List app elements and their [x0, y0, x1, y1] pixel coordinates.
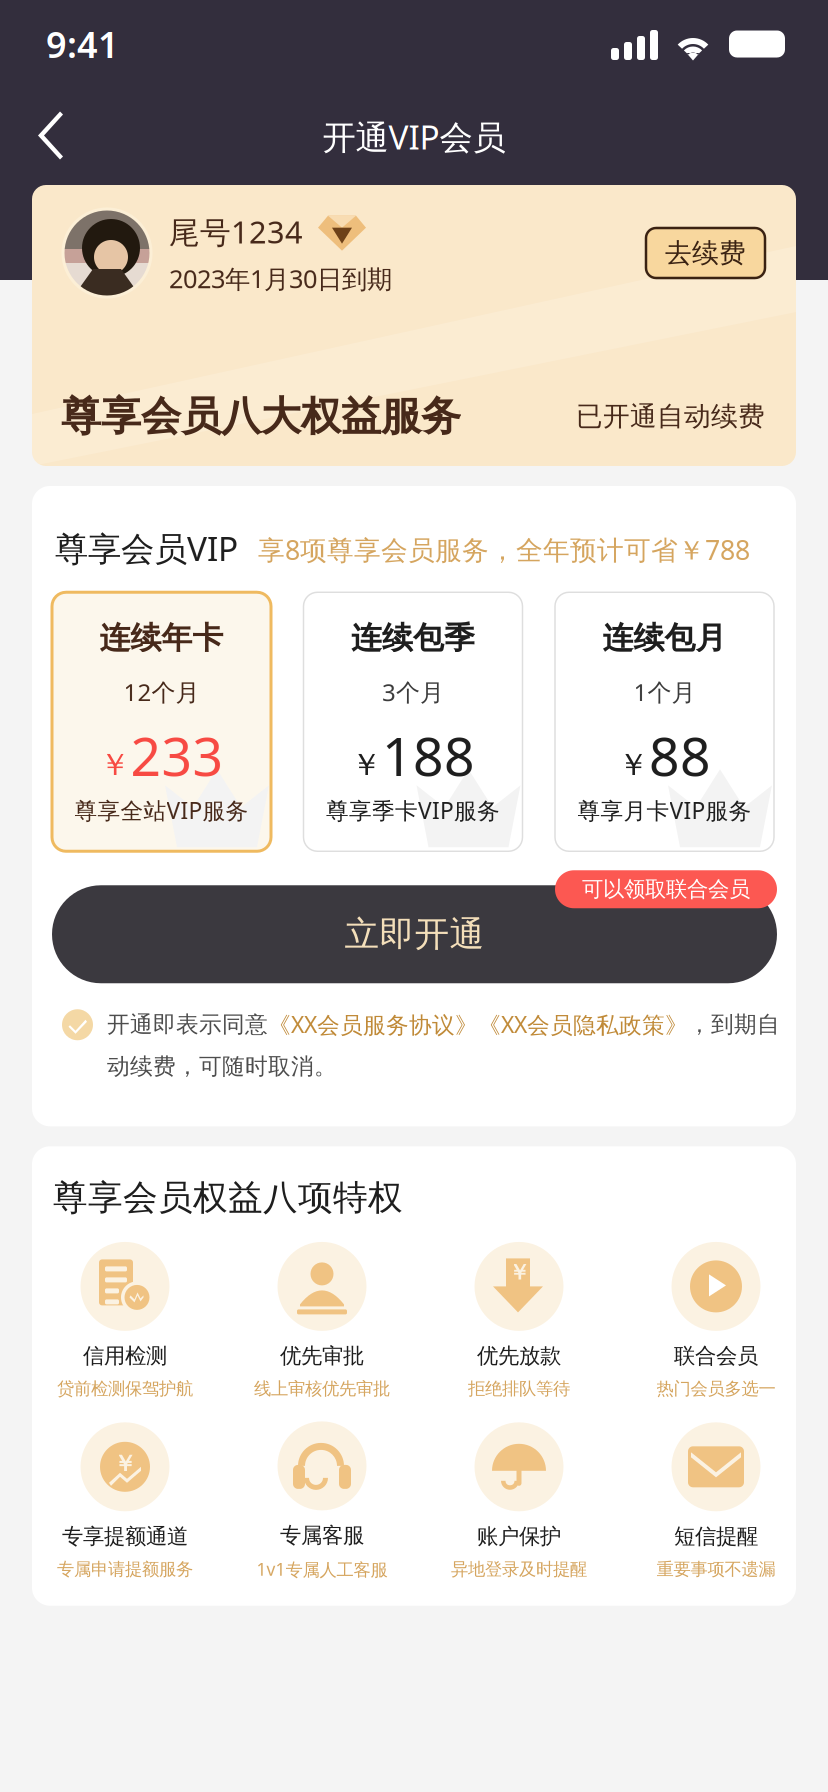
button[interactable]: ￥: [468, 1242, 570, 1399]
button[interactable]: 去续费: [646, 228, 765, 278]
staticText: ￥: [113, 1450, 136, 1478]
staticText: 热门会员多选一: [656, 1378, 775, 1399]
button[interactable]: ￥: [57, 1422, 193, 1580]
staticText: 线上审核优先审批: [254, 1378, 390, 1399]
staticText: 拒绝排队等待: [468, 1378, 570, 1399]
staticText: ￥: [99, 746, 130, 784]
button[interactable]: 短信提醒: [656, 1422, 775, 1580]
staticText: 动续费，可随时取消。: [107, 1052, 337, 1080]
staticText: 9:41: [46, 20, 119, 68]
staticText: 可以领取联合会员: [582, 876, 750, 902]
staticText: ，到期自: [688, 1010, 780, 1038]
button[interactable]: 联合会员: [656, 1242, 775, 1399]
button[interactable]: 账户保护: [451, 1422, 587, 1580]
staticText: 88: [649, 720, 711, 791]
staticText: 联合会员: [674, 1343, 758, 1369]
staticText: 已开通自动续费: [576, 400, 765, 433]
staticText: 12个月: [123, 676, 199, 708]
button[interactable]: 优先审批: [254, 1242, 390, 1399]
button[interactable]: 连续年卡: [52, 592, 271, 851]
staticText: 连续包季: [351, 619, 475, 657]
staticText: 立即开通: [344, 913, 484, 956]
staticText: 233: [130, 720, 223, 791]
button[interactable]: Agree to terms: [62, 1009, 93, 1040]
staticText: 尊享月卡VIP服务: [577, 795, 751, 825]
staticText: 优先审批: [280, 1343, 364, 1369]
staticText: 尊享会员权益八项特权: [53, 1176, 403, 1219]
staticText: 3个月: [382, 676, 444, 708]
staticText: 尊享全站VIP服务: [74, 795, 248, 825]
staticText: 1v1专属人工客服: [256, 1558, 387, 1581]
staticText: 尊享会员VIP: [55, 526, 238, 570]
button[interactable]: 专属客服: [256, 1421, 387, 1581]
staticText: 连续年卡: [99, 619, 223, 657]
staticText: 尾号1234: [169, 211, 303, 252]
staticText: 《XX会员隐私政策》: [478, 1009, 688, 1039]
button[interactable]: 立即开通: [52, 885, 777, 983]
staticText: 贷前检测保驾护航: [57, 1378, 193, 1399]
staticText: 尊享会员八大权益服务: [61, 392, 461, 441]
staticText: 188: [382, 720, 475, 791]
staticText: 开通VIP会员: [322, 114, 505, 159]
staticText: 尊享季卡VIP服务: [326, 795, 500, 825]
staticText: 1个月: [633, 676, 695, 708]
staticText: 专属客服: [280, 1522, 364, 1549]
staticText: 专属申请提额服务: [57, 1558, 193, 1580]
staticText: 重要事项不遗漏: [656, 1558, 775, 1580]
staticText: 账户保护: [477, 1523, 561, 1549]
button[interactable]: 连续包季: [303, 592, 522, 851]
button[interactable]: Back: [18, 91, 88, 181]
button[interactable]: 连续包月: [555, 592, 774, 851]
staticText: 短信提醒: [674, 1523, 758, 1549]
staticText: ￥: [618, 746, 649, 784]
staticText: ￥: [351, 746, 382, 784]
staticText: 《XX会员服务协议》: [268, 1009, 478, 1039]
button[interactable]: 信用检测: [57, 1242, 193, 1399]
staticText: 开通即表示同意: [107, 1010, 268, 1038]
staticText: 2023年1月30日到期: [169, 262, 392, 295]
staticText: 优先放款: [477, 1343, 561, 1369]
staticText: 异地登录及时提醒: [451, 1558, 587, 1580]
staticText: 信用检测: [83, 1343, 167, 1369]
staticText: ￥: [508, 1259, 529, 1286]
staticText: 专享提额通道: [62, 1523, 188, 1549]
staticText: 享8项尊享会员服务，全年预计可省￥788: [258, 532, 750, 567]
staticText: 连续包月: [602, 619, 726, 657]
button[interactable]: 可以领取联合会员: [555, 870, 777, 908]
staticText: 去续费: [665, 237, 746, 269]
